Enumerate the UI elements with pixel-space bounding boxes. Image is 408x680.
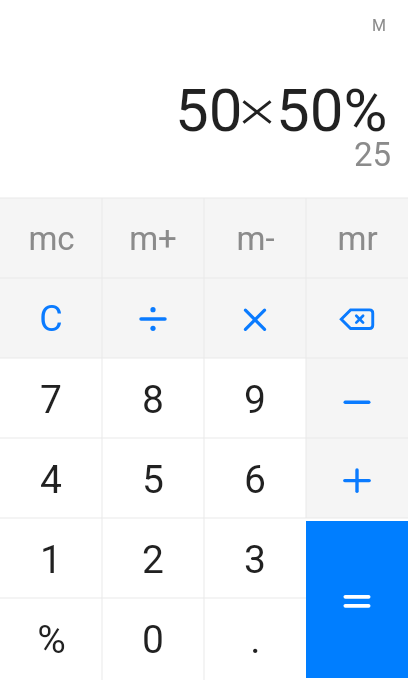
staticText: 6 — [244, 457, 266, 503]
staticText: 3 — [244, 537, 266, 583]
staticText: 4 — [40, 457, 62, 503]
staticText: m+ — [129, 219, 177, 258]
staticText: 5 — [142, 457, 164, 503]
staticText: 8 — [142, 377, 164, 423]
staticText: % — [37, 617, 66, 663]
staticText: C — [39, 298, 63, 340]
staticText: mr — [337, 219, 378, 258]
button[interactable]: 0 — [102, 598, 204, 678]
staticText: M — [372, 16, 386, 35]
staticText: mc — [28, 219, 75, 258]
button[interactable]: Divide — [102, 278, 204, 358]
staticText: 7 — [40, 377, 62, 423]
button[interactable]: 8 — [102, 358, 204, 438]
button[interactable]: Multiply — [204, 278, 306, 358]
button[interactable]: 3 — [204, 518, 306, 598]
button[interactable]: m- — [204, 198, 306, 278]
button[interactable]: Equals — [306, 521, 408, 678]
button[interactable]: mc — [0, 198, 102, 278]
staticText: 25 — [354, 135, 392, 174]
staticText: 2 — [142, 537, 164, 583]
staticText: 50% — [276, 75, 388, 145]
button[interactable]: 5 — [102, 438, 204, 518]
button[interactable]: % — [0, 598, 102, 678]
button[interactable]: . — [204, 598, 306, 678]
staticText: 9 — [244, 377, 266, 423]
button[interactable]: Backspace — [306, 278, 408, 358]
staticText: 1 — [40, 537, 62, 583]
button[interactable]: 6 — [204, 438, 306, 518]
button[interactable]: 9 — [204, 358, 306, 438]
button[interactable]: 2 — [102, 518, 204, 598]
button[interactable]: mr — [306, 198, 408, 278]
staticText: 0 — [142, 617, 164, 663]
button[interactable]: m+ — [102, 198, 204, 278]
staticText: 50 — [175, 75, 243, 145]
button[interactable]: C — [0, 278, 102, 358]
button[interactable]: 4 — [0, 438, 102, 518]
button[interactable]: Plus — [306, 438, 408, 518]
staticText: m- — [236, 219, 275, 258]
staticText: . — [250, 617, 261, 663]
button[interactable]: Minus — [306, 358, 408, 438]
button[interactable]: 1 — [0, 518, 102, 598]
button[interactable]: 7 — [0, 358, 102, 438]
